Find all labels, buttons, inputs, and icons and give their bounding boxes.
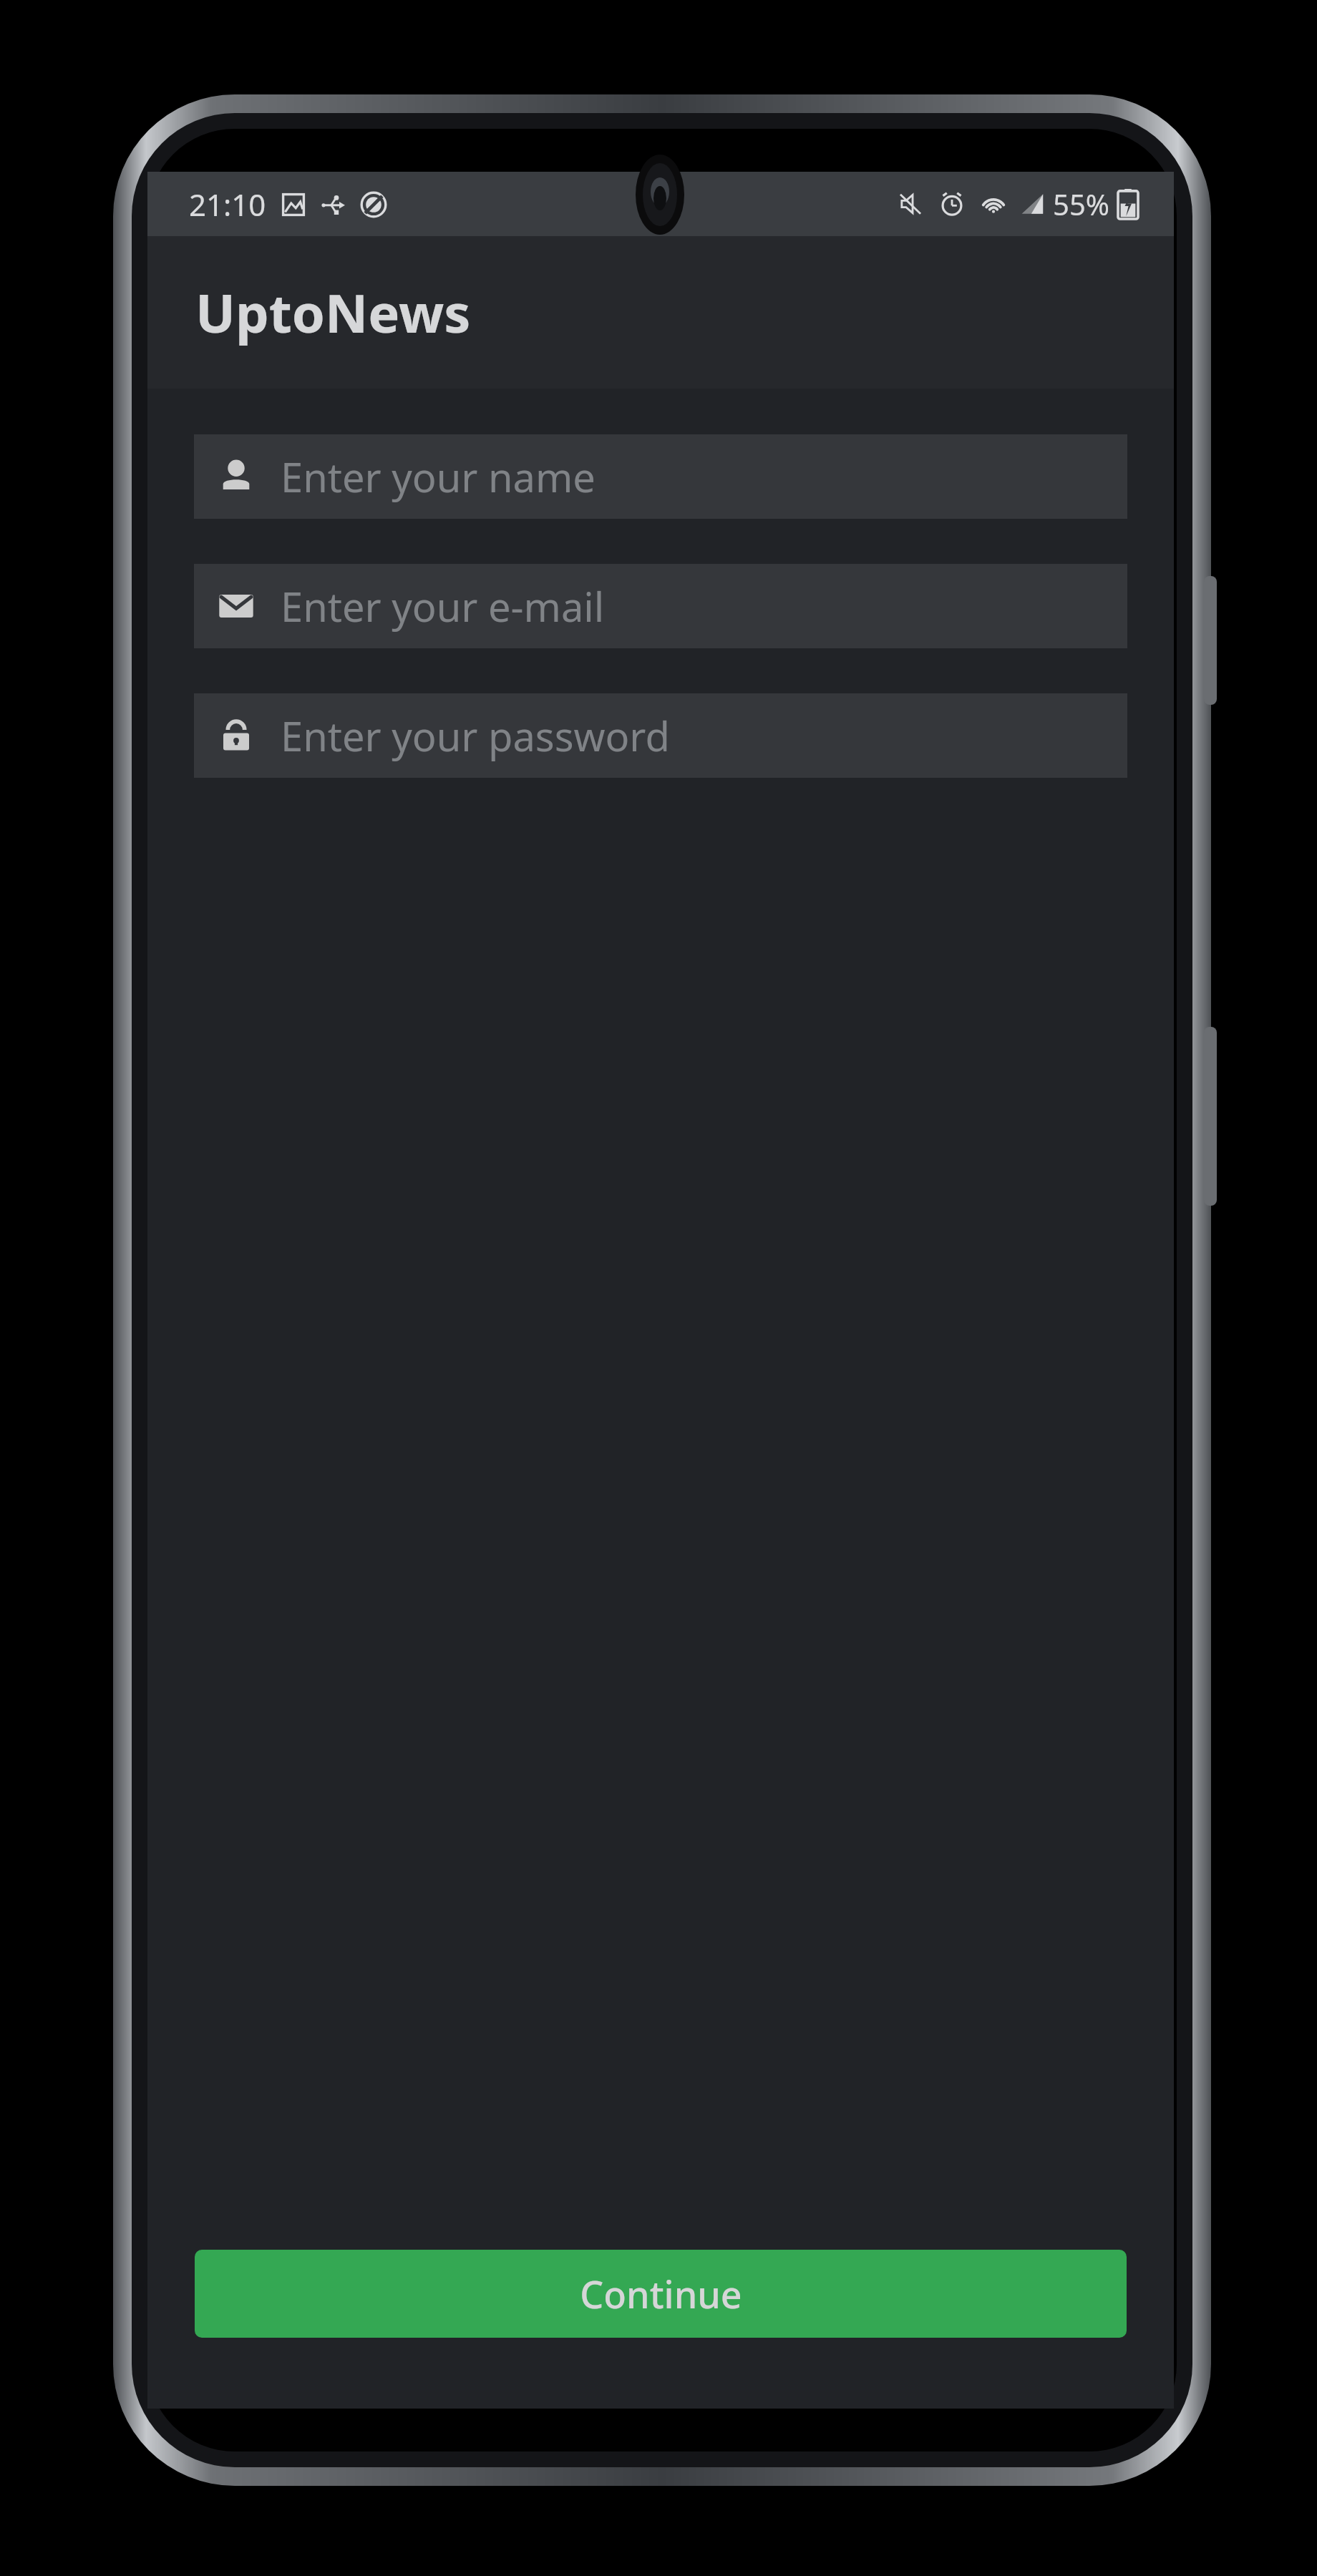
button[interactable]: Name xyxy=(194,434,1127,519)
staticText: Enter your name xyxy=(281,449,596,504)
staticText: 21:10 xyxy=(189,184,266,225)
staticText: UptoNews xyxy=(195,276,471,348)
button[interactable]: E-mail xyxy=(194,564,1127,648)
staticText: Enter your e-mail xyxy=(281,579,605,633)
other: E-mail xyxy=(215,585,258,628)
staticText: Continue xyxy=(580,2268,742,2319)
staticText: Enter your password xyxy=(281,708,670,763)
staticText: 55% xyxy=(1053,185,1109,223)
button[interactable]: Continue xyxy=(195,2250,1127,2338)
button[interactable]: Password xyxy=(194,693,1127,778)
other: Password xyxy=(215,714,258,757)
other: Name xyxy=(215,455,258,498)
